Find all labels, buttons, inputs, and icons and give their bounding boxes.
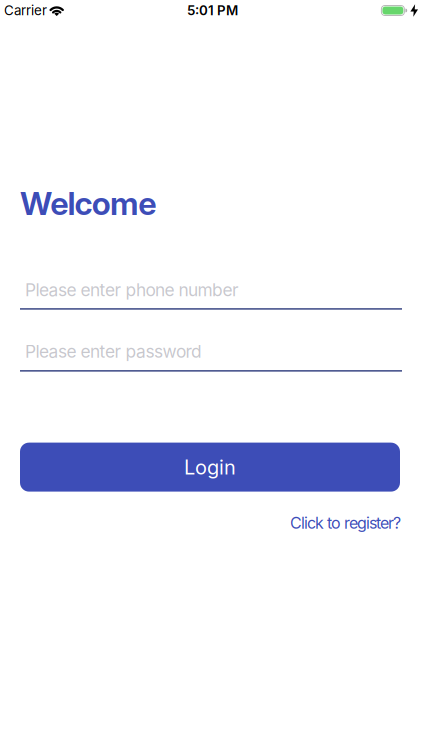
button[interactable]: Login xyxy=(20,443,400,492)
staticText: Carrier xyxy=(4,3,47,18)
staticText: Login xyxy=(184,455,236,479)
staticText: Click to register? xyxy=(290,514,401,532)
button[interactable]: Click to register? xyxy=(290,514,401,532)
button[interactable]: Please enter phone number xyxy=(20,280,402,310)
staticText: 5:01 PM xyxy=(187,3,238,18)
button[interactable]: Please enter password xyxy=(20,341,402,372)
staticText: Please enter phone number xyxy=(25,280,239,300)
staticText: Welcome xyxy=(20,184,156,223)
staticText: Please enter password xyxy=(25,341,202,362)
